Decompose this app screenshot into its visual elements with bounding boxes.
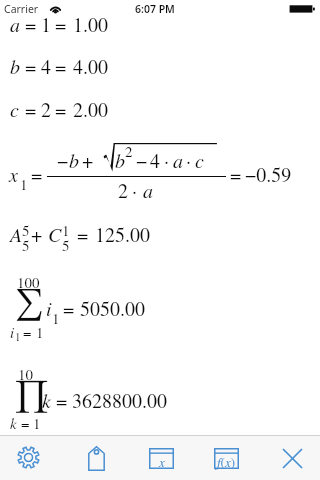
staticText: 100 (17, 272, 40, 292)
staticText: i (46, 295, 52, 322)
staticText: = (55, 53, 67, 80)
staticText: + (31, 221, 43, 248)
staticText: 1 (41, 11, 51, 38)
staticText: 2.00 (73, 96, 108, 123)
staticText: − (57, 147, 69, 174)
staticText: x (9, 161, 18, 188)
staticText: = (31, 161, 43, 188)
staticText: c (10, 96, 19, 123)
staticText: 1 (33, 413, 41, 433)
staticText: a (10, 11, 20, 38)
staticText: = (25, 96, 37, 123)
button[interactable]: Close (267, 436, 317, 480)
staticText: = (23, 322, 32, 342)
staticText: · (164, 147, 169, 174)
staticText: = (55, 11, 67, 38)
staticText: b (69, 147, 79, 174)
staticText: 1 (62, 220, 70, 240)
staticText: 1 (52, 308, 60, 328)
staticText: = (56, 387, 68, 414)
staticText: = (55, 96, 67, 123)
staticText: i (10, 322, 15, 342)
staticText: 5 (22, 235, 30, 255)
staticText: 4.00 (73, 53, 108, 80)
staticText: 6:07 PM (135, 2, 175, 16)
staticText: = (63, 295, 75, 322)
staticText: 2 (41, 96, 51, 123)
staticText: 125.00 (95, 221, 150, 248)
staticText: 2 (125, 141, 133, 161)
staticText: Carrier (4, 2, 39, 16)
button[interactable]: Functions (201, 436, 251, 480)
staticText: ∏ (14, 381, 50, 412)
staticText: c (195, 147, 204, 174)
staticText: = (25, 11, 37, 38)
staticText: a (143, 177, 153, 204)
staticText: b (115, 147, 125, 174)
staticText: −0.59 (245, 161, 292, 188)
staticText: f(x) (217, 453, 236, 471)
button[interactable]: Tags (71, 436, 121, 480)
staticText: = (230, 161, 242, 188)
staticText: = (77, 221, 89, 248)
staticText: 10 (18, 364, 34, 384)
staticText: 1 (15, 329, 21, 344)
staticText: 4 (150, 147, 160, 174)
staticText: · (186, 147, 191, 174)
staticText: − (136, 147, 148, 174)
staticText: k (10, 413, 17, 433)
staticText: C (48, 221, 62, 248)
staticText: a (173, 147, 183, 174)
staticText: x (159, 453, 165, 470)
staticText: A (10, 221, 23, 248)
staticText: 5050.00 (80, 295, 145, 322)
staticText: 1 (20, 174, 28, 194)
staticText: 5 (62, 235, 70, 255)
staticText: 4 (41, 53, 51, 80)
staticText: = (21, 413, 30, 433)
staticText: + (82, 147, 94, 174)
staticText: 1.00 (73, 11, 108, 38)
staticText: = (25, 53, 37, 80)
staticText: k (42, 387, 51, 414)
button[interactable]: Settings (3, 436, 53, 480)
staticText: 1 (36, 322, 44, 342)
button[interactable]: Variables (136, 436, 186, 480)
staticText: · (132, 177, 137, 204)
staticText: 5 (22, 220, 30, 240)
staticText: 2 (118, 177, 128, 204)
staticText: b (10, 53, 20, 80)
staticText: 3628800.00 (72, 387, 167, 414)
staticText: ∑ (15, 289, 45, 320)
